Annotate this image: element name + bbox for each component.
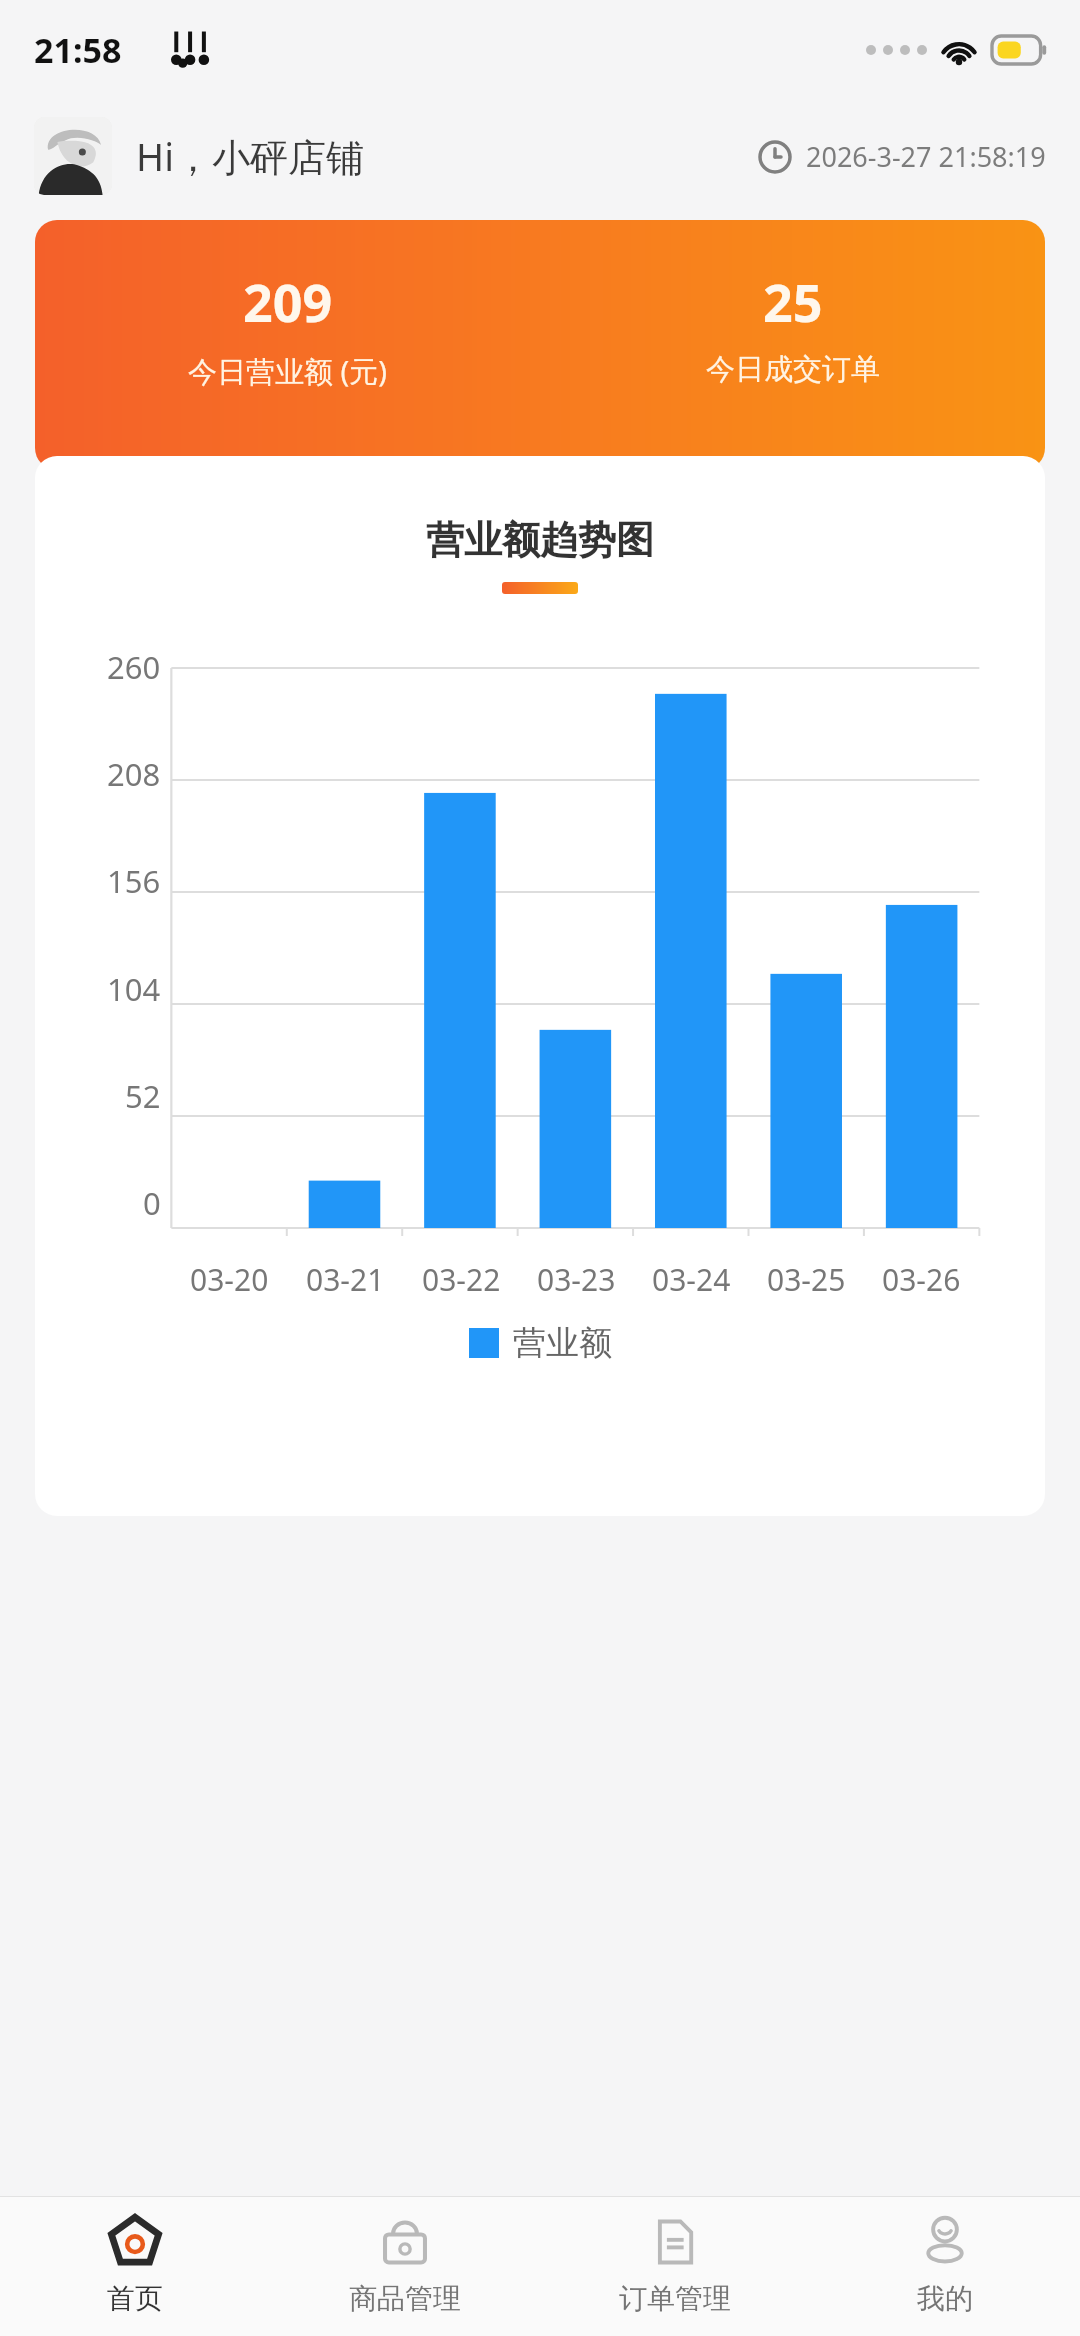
- staticText: Hi，小砰店铺: [136, 130, 364, 182]
- staticText: 209: [243, 266, 333, 337]
- staticText: 营业额: [513, 1322, 612, 1364]
- staticText: 21:58: [34, 27, 122, 73]
- staticText: 03-25: [767, 1259, 846, 1300]
- staticText: 营业额趋势图: [35, 516, 1045, 564]
- staticText: 今日成交订单: [706, 351, 880, 388]
- staticText: 03-22: [422, 1259, 501, 1300]
- staticText: 03-21: [306, 1259, 385, 1300]
- button[interactable]: Avatar: [34, 117, 112, 195]
- button[interactable]: 我的: [810, 2197, 1080, 2336]
- staticText: 104: [107, 968, 161, 1010]
- staticText: 首页: [107, 2281, 163, 2316]
- staticText: 03-24: [652, 1259, 731, 1300]
- staticText: 2026-3-27 21:58:19: [806, 138, 1046, 175]
- staticText: 208: [107, 753, 161, 795]
- staticText: 52: [125, 1075, 161, 1117]
- button[interactable]: 商品管理: [270, 2197, 540, 2336]
- staticText: 商品管理: [349, 2281, 461, 2316]
- staticText: 25: [763, 266, 823, 337]
- staticText: 03-23: [537, 1259, 616, 1300]
- staticText: 156: [107, 860, 161, 902]
- button[interactable]: 首页: [0, 2197, 270, 2336]
- button[interactable]: 209: [35, 220, 1045, 470]
- staticText: 订单管理: [619, 2281, 731, 2316]
- button[interactable]: 订单管理: [540, 2197, 810, 2336]
- staticText: 260: [107, 646, 161, 688]
- staticText: 03-26: [882, 1259, 961, 1300]
- staticText: 0: [143, 1182, 161, 1224]
- staticText: 我的: [917, 2281, 973, 2316]
- staticText: 03-20: [190, 1259, 269, 1300]
- staticText: 今日营业额 (元): [188, 351, 387, 391]
